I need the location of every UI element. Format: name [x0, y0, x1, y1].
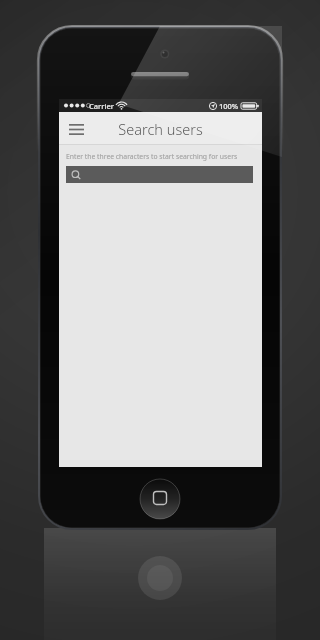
staticText: Carrier	[89, 101, 114, 111]
staticText: Search users	[118, 119, 203, 139]
button[interactable]: Search users input	[66, 166, 253, 183]
button[interactable]: Open navigation menu	[63, 116, 89, 142]
staticText: Enter the three characters to start sear…	[66, 152, 238, 161]
button[interactable]: Home	[140, 479, 180, 519]
staticText: 100%	[219, 101, 239, 111]
